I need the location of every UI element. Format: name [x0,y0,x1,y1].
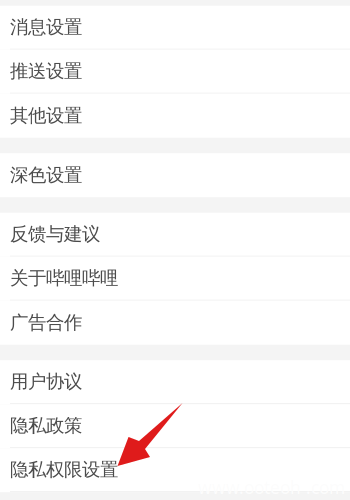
staticText: 广告合作 [10,311,82,334]
staticText: 深色设置 [10,164,82,187]
button[interactable]: 推送设置 [0,50,350,94]
button[interactable]: 隐私权限设置 [0,448,350,492]
button[interactable]: 隐私政策 [0,404,350,448]
staticText: 关于哔哩哔哩 [10,267,118,290]
button[interactable]: 其他设置 [0,94,350,138]
staticText: 隐私权限设置 [10,458,118,481]
staticText: 反馈与建议 [10,223,100,246]
staticText: 推送设置 [10,60,82,83]
button[interactable]: 反馈与建议 [0,213,350,257]
button[interactable]: 深色设置 [0,153,350,197]
staticText: 隐私政策 [10,414,82,437]
staticText: 消息设置 [10,16,82,39]
button[interactable]: 消息设置 [0,6,350,50]
staticText: www.ooteoh .com [198,475,345,499]
button[interactable]: 广告合作 [0,301,350,345]
button[interactable]: 用户协议 [0,360,350,404]
staticText: 用户协议 [10,370,82,393]
staticText: 其他设置 [10,104,82,127]
button[interactable]: 关于哔哩哔哩 [0,257,350,301]
